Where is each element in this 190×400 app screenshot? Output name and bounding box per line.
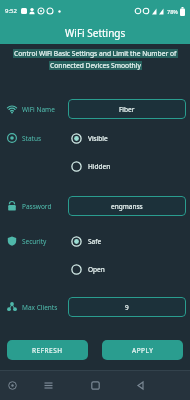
staticText: Visible [88,134,108,143]
staticText: REFRESH [32,346,63,355]
button[interactable]: Visible [71,130,108,146]
button[interactable]: Open [71,261,105,277]
staticText: Control WiFi Basic Settings and Limit th… [14,49,177,58]
button[interactable]: Fiber [68,99,186,119]
staticText: Safe [88,237,102,246]
button[interactable]: engmanss [68,196,186,216]
button[interactable] [85,371,105,400]
button[interactable]: 9 [68,297,186,317]
staticText: APPLY [132,346,154,355]
staticText: Hidden [88,162,111,171]
staticText: WiFi Name [22,105,55,114]
button[interactable]: Hidden [71,158,111,174]
staticText: WiFi Settings [65,26,126,40]
staticText: Fiber [119,105,135,114]
button[interactable]: WiFi Settings [0,22,190,44]
staticText: 9 [125,303,129,312]
staticText: Password [22,202,52,211]
staticText: 9:52 [5,7,17,15]
button[interactable] [130,371,150,400]
staticText: Status [22,134,42,143]
staticText: engmanss [111,202,143,211]
staticText: 78% [167,8,178,15]
button[interactable]: APPLY [102,340,183,360]
button[interactable]: REFRESH [7,340,88,360]
button[interactable]: Safe [71,233,102,249]
staticText: Security [22,237,47,246]
staticText: Connected Devices Smoothly [50,61,141,70]
staticText: Open [88,265,105,274]
staticText: Max Clients [22,303,58,312]
button[interactable] [0,371,24,400]
button[interactable] [38,371,58,400]
